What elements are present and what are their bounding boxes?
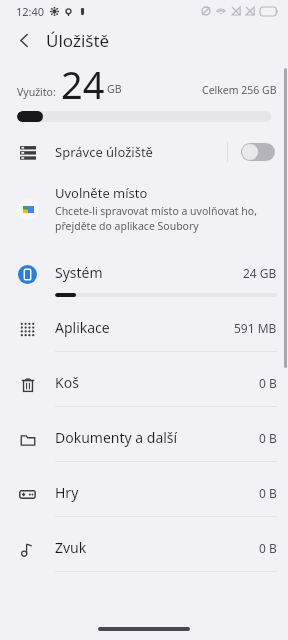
staticText: Systém	[55, 263, 103, 282]
button[interactable]: Back	[8, 24, 40, 56]
staticText: 591 MB	[234, 320, 277, 336]
button[interactable]: Zvuk	[0, 526, 288, 581]
button[interactable]: Aplikace	[0, 306, 288, 361]
staticText: 0 B	[259, 485, 277, 501]
staticText: Chcete-li spravovat místo a uvolňovat ho…	[55, 204, 258, 218]
staticText: 0 B	[259, 430, 277, 446]
staticText: Dokumenty a další	[55, 428, 178, 447]
staticText: 24 GB	[243, 265, 277, 281]
staticText: 24	[61, 58, 105, 99]
staticText: Úložiště	[46, 29, 110, 52]
staticText: 0 B	[259, 375, 277, 391]
button[interactable]: Uvolněte místo	[0, 172, 288, 243]
button[interactable]: Hry	[0, 471, 288, 526]
button[interactable]: Správce úložiště	[0, 132, 288, 172]
staticText: přejděte do aplikace Soubory	[55, 219, 199, 233]
button[interactable]: Dokumenty a další	[0, 416, 288, 471]
button[interactable]: Správce úložiště toggle	[241, 143, 275, 161]
staticText: Celkem 256 GB	[202, 83, 277, 97]
staticText: Využito:	[17, 85, 56, 99]
staticText: Uvolněte místo	[55, 184, 148, 202]
button[interactable]: Koš	[0, 361, 288, 416]
staticText: 12:40	[16, 4, 45, 19]
staticText: Hry	[55, 483, 79, 502]
staticText: Správce úložiště	[55, 143, 153, 161]
button[interactable]: Systém	[0, 251, 288, 306]
staticText: Koš	[55, 373, 79, 392]
staticText: GB	[107, 82, 122, 96]
staticText: Zvuk	[55, 538, 87, 557]
staticText: Aplikace	[55, 318, 110, 337]
staticText: 0 B	[259, 540, 277, 556]
